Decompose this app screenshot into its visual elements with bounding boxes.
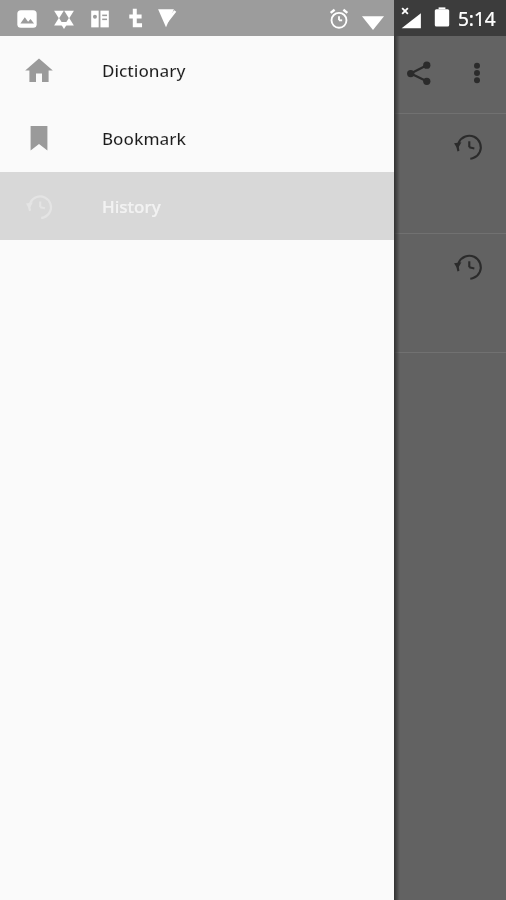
- staticText: History: [102, 195, 161, 218]
- button[interactable]: Bookmark: [0, 104, 394, 172]
- button[interactable]: [0, 234, 506, 352]
- button[interactable]: Dictionary: [0, 36, 394, 104]
- staticText: 5:14: [458, 6, 496, 32]
- staticText: Bookmark: [102, 127, 186, 150]
- button[interactable]: [0, 114, 506, 233]
- button[interactable]: Share: [396, 50, 442, 96]
- staticText: Dictionary: [102, 59, 186, 82]
- button[interactable]: More options: [454, 50, 500, 96]
